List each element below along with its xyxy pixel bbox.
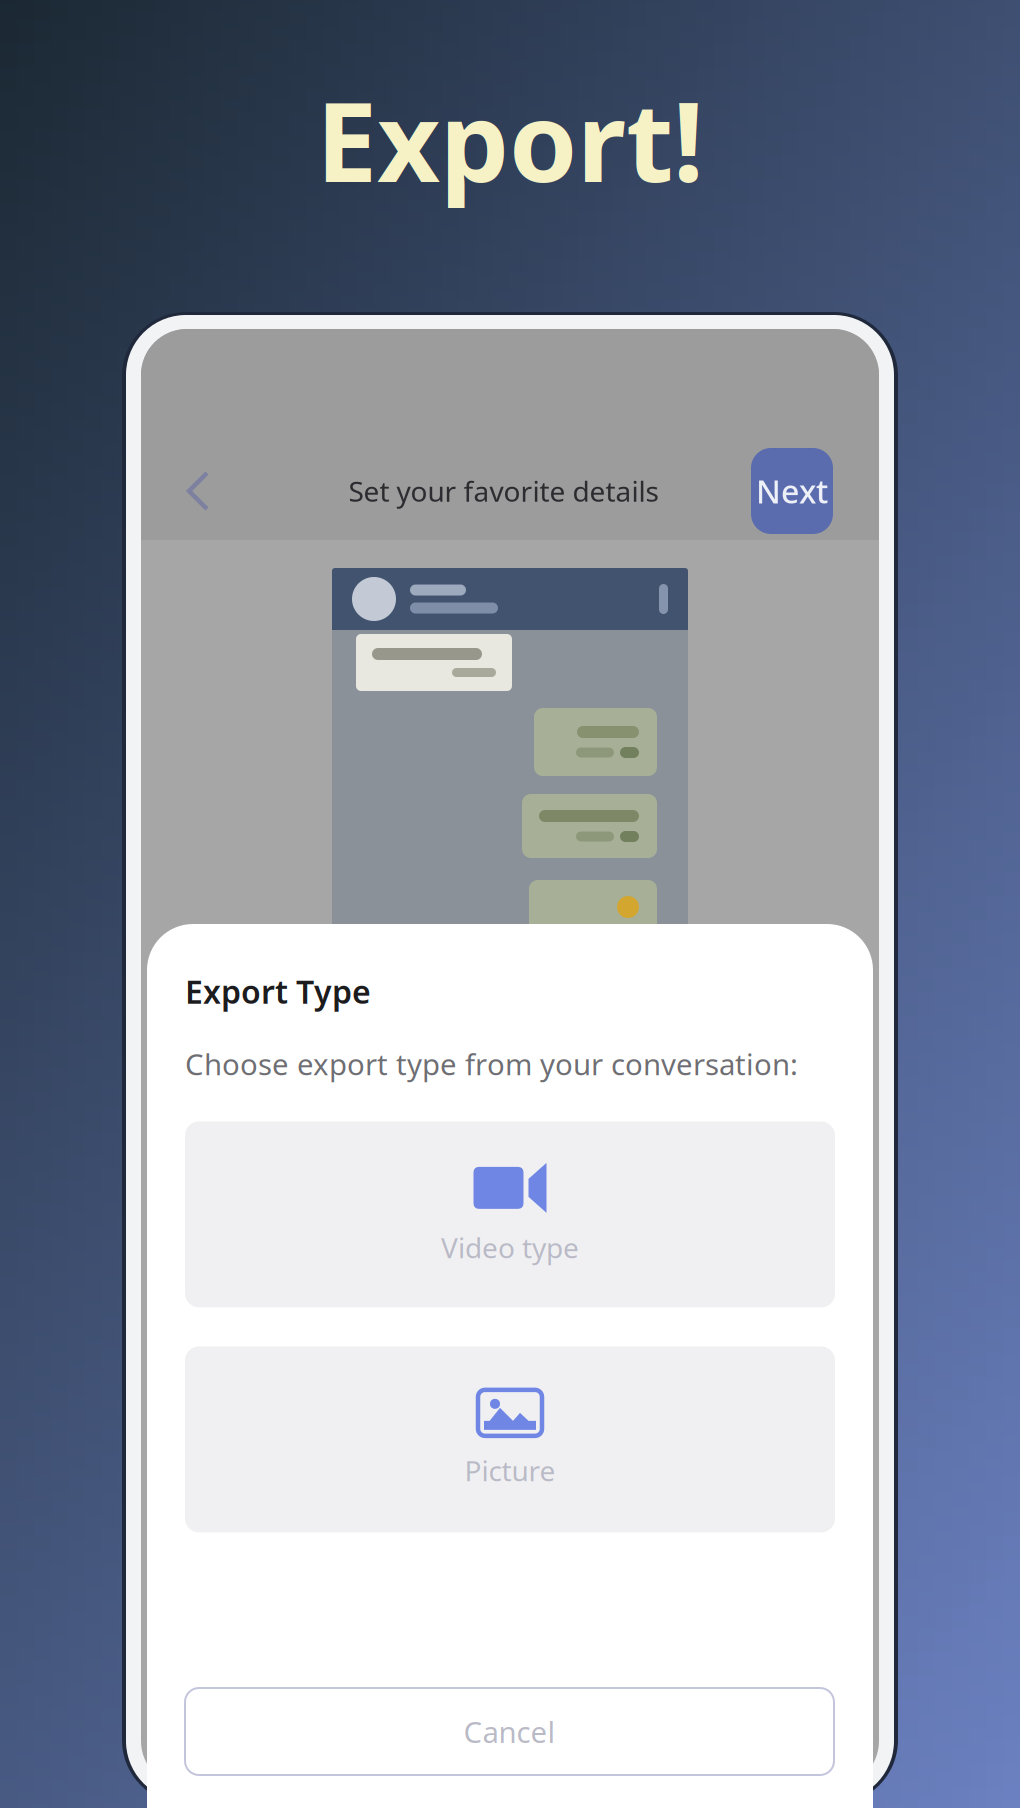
staticText: Choose export type from your conversatio… [185,1044,798,1083]
button[interactable]: Picture [185,1346,835,1532]
staticText: Export! [316,67,704,212]
button[interactable]: Cancel [185,1688,834,1775]
staticText: Cancel [463,1712,555,1751]
button[interactable]: Video type [185,1121,835,1307]
staticText: Export Type [185,970,371,1012]
button[interactable]: Next [751,448,833,534]
button[interactable]: Back [172,451,224,531]
staticText: Next [756,470,828,512]
staticText: Video type [441,1229,579,1266]
staticText: Picture [464,1452,555,1489]
staticText: Set your favorite details [348,472,658,510]
